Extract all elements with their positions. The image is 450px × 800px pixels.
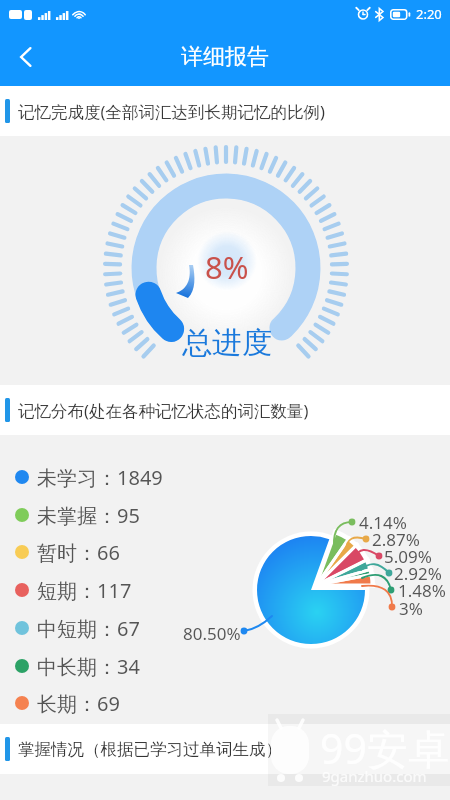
staticText: 3% <box>399 597 423 620</box>
staticText: 掌握情况（根据已学习过单词生成） <box>18 739 282 760</box>
staticText: 中短期：67 <box>37 615 140 642</box>
staticText: 中长期：34 <box>37 653 140 680</box>
staticText: 未掌握：95 <box>37 502 140 529</box>
staticText: 8% <box>205 246 249 288</box>
staticText: 2.92% <box>394 562 442 585</box>
staticText: 短期：117 <box>37 577 132 604</box>
staticText: 2:20 <box>416 5 442 23</box>
staticText: 总进度 <box>182 324 272 362</box>
staticText: 详细报告 <box>181 43 269 71</box>
staticText: 4.14% <box>359 511 407 534</box>
staticText: 80.50% <box>183 622 241 645</box>
staticText: 暂时：66 <box>37 539 120 566</box>
staticText: 99安卓 <box>320 720 449 776</box>
staticText: 5.09% <box>384 545 432 568</box>
staticText: 2.87% <box>372 528 420 551</box>
staticText: 长期：69 <box>37 690 120 717</box>
staticText: 记忆分布(处在各种记忆状态的词汇数量) <box>18 399 309 422</box>
staticText: 9ganzhuo.com <box>322 766 427 786</box>
button[interactable]: Back <box>0 31 52 83</box>
staticText: 记忆完成度(全部词汇达到长期记忆的比例) <box>18 100 325 123</box>
staticText: 未学习：1849 <box>37 464 163 491</box>
staticText: 1.48% <box>398 579 446 602</box>
